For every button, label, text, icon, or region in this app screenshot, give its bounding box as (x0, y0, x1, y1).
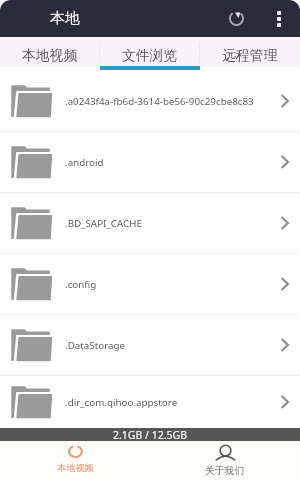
staticText: .a0243f4a-fb6d-3614-be56-90c29cbe8c83 (65, 95, 268, 108)
staticText: .dir_com.qihoo.appstore (65, 396, 268, 409)
button[interactable]: More options (267, 7, 291, 31)
staticText: 文件浏览 (122, 47, 178, 64)
button[interactable]: .a0243f4a-fb6d-3614-be56-90c29cbe8c83 (0, 71, 300, 131)
staticText: 2.1GB / 12.5GB (113, 428, 187, 441)
staticText: 关于我们 (205, 465, 245, 477)
button[interactable]: 本地视频 (0, 443, 150, 480)
button[interactable]: Refresh (224, 6, 249, 31)
staticText: .android (65, 156, 268, 169)
button[interactable]: .DataStorage (0, 315, 300, 375)
button[interactable]: 本地视频 (0, 37, 100, 67)
button[interactable]: .android (0, 132, 300, 192)
staticText: 本地视频 (22, 47, 78, 64)
button[interactable]: 文件浏览 (100, 37, 200, 67)
button[interactable]: .dir_com.qihoo.appstore (0, 376, 300, 428)
staticText: 本地视频 (57, 462, 94, 474)
staticText: 远程管理 (222, 47, 278, 64)
button[interactable]: 关于我们 (150, 443, 300, 480)
staticText: .BD_SAPI_CACHE (65, 217, 268, 230)
staticText: .config (65, 278, 268, 291)
staticText: 本地 (50, 9, 80, 28)
button[interactable]: .BD_SAPI_CACHE (0, 193, 300, 253)
button[interactable]: 远程管理 (200, 37, 300, 67)
button[interactable]: .config (0, 254, 300, 314)
staticText: .DataStorage (65, 339, 268, 352)
